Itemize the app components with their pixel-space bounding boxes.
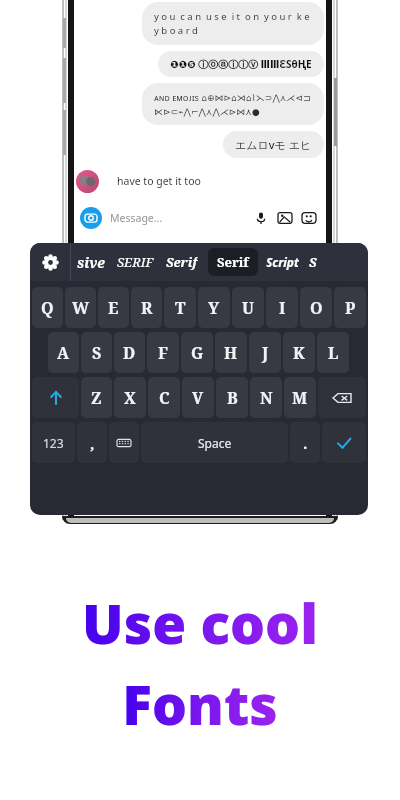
staticText: V (192, 387, 204, 409)
staticText: A (57, 342, 70, 364)
button[interactable]: Serif (166, 253, 198, 271)
staticText: F (158, 342, 168, 364)
button[interactable]: P (334, 287, 366, 328)
button[interactable]: 123 (32, 422, 75, 463)
staticText: Fonts (122, 666, 278, 741)
staticText: エムロvモ エヒ (235, 137, 312, 152)
staticText: U (242, 297, 254, 319)
button[interactable]: I (266, 287, 298, 328)
button[interactable]: O (300, 287, 332, 328)
staticText: sive (77, 253, 105, 272)
button[interactable]: G (181, 332, 213, 373)
staticText: Script (266, 254, 299, 270)
button[interactable]: Settings (30, 243, 70, 281)
button[interactable]: . (290, 422, 320, 463)
button[interactable]: S (81, 332, 112, 373)
staticText: R (141, 297, 153, 319)
staticText: Space (198, 435, 232, 451)
staticText: Use cool (82, 585, 318, 660)
other: Camera (80, 207, 102, 229)
staticText: E (108, 297, 119, 319)
staticText: G (191, 342, 204, 364)
button[interactable] (322, 422, 366, 463)
staticText: T (175, 297, 186, 319)
button[interactable]: H (215, 332, 247, 373)
button[interactable]: R (131, 287, 162, 328)
button[interactable]: W (65, 287, 96, 328)
button[interactable]: Stickers (302, 211, 316, 225)
button[interactable]: S (309, 253, 317, 271)
button[interactable]: Gallery (278, 211, 292, 225)
staticText: 123 (43, 435, 64, 451)
button[interactable]: X (114, 377, 146, 418)
staticText: H (224, 342, 238, 364)
button[interactable] (32, 377, 79, 418)
staticText: Message... (110, 211, 163, 225)
staticText: S (92, 342, 102, 364)
button[interactable]: , (77, 422, 107, 463)
button[interactable]: L (317, 332, 349, 373)
staticText: K (293, 342, 305, 364)
button[interactable]: K (283, 332, 315, 373)
staticText: Z (91, 387, 102, 409)
staticText: , (90, 433, 95, 453)
staticText: ❶❶❺ ⓘⓞⓐⓘⓘⓥ ⅢⅢƐSθⱧE (170, 57, 312, 71)
staticText: M (292, 387, 308, 409)
button[interactable]: sive (77, 253, 105, 272)
staticText: Serif (217, 253, 249, 271)
staticText: L (328, 342, 339, 364)
button[interactable]: T (164, 287, 196, 328)
button[interactable]: Space (141, 422, 288, 463)
button[interactable]: Y (198, 287, 230, 328)
button[interactable]: Camera (76, 203, 324, 233)
button[interactable]: B (216, 377, 248, 418)
button[interactable]: SERIF (117, 253, 154, 271)
button[interactable]: Serif (208, 248, 258, 276)
button[interactable]: A (48, 332, 79, 373)
staticText: O (310, 297, 323, 319)
staticText: J (262, 342, 269, 364)
staticText: C (159, 387, 170, 409)
staticText: I (279, 297, 286, 319)
button[interactable]: M (284, 377, 316, 418)
button[interactable]: J (249, 332, 281, 373)
button[interactable]: E (98, 287, 129, 328)
button[interactable]: D (114, 332, 145, 373)
staticText: Serif (166, 253, 198, 271)
staticText: X (124, 387, 136, 409)
button[interactable] (109, 422, 139, 463)
button[interactable]: C (148, 377, 180, 418)
staticText: y o u c a n u s e i t o n y o u r k e y … (154, 10, 312, 37)
staticText: Q (41, 297, 54, 319)
staticText: . (303, 433, 308, 453)
button[interactable]: F (147, 332, 179, 373)
staticText: D (123, 342, 136, 364)
button[interactable]: Voice message (254, 211, 268, 225)
staticText: have to get it too (117, 174, 201, 188)
staticText: SERIF (117, 253, 154, 271)
button[interactable]: V (182, 377, 214, 418)
staticText: W (72, 297, 90, 319)
button[interactable]: Script (266, 254, 299, 270)
button[interactable]: N (250, 377, 282, 418)
staticText: ᴀɴᴅ ᴇᴍᴏᴊɪs ⌂⊕⋈⊳⌂⋊⌂⌇⋋⊃⋀⋏⋌⊲⊐⋉⊳⊂⌁⋀⌐⋀⋏⋀⋌⊳⋈⋏● (154, 91, 312, 117)
button[interactable]: Z (81, 377, 112, 418)
staticText: N (260, 387, 273, 409)
staticText: S (309, 253, 317, 271)
button[interactable]: U (232, 287, 264, 328)
button[interactable] (318, 377, 366, 418)
staticText: B (227, 387, 238, 409)
button[interactable]: Profile photo (76, 170, 99, 193)
staticText: Y (208, 297, 220, 319)
staticText: P (345, 297, 356, 319)
button[interactable]: Q (32, 287, 63, 328)
